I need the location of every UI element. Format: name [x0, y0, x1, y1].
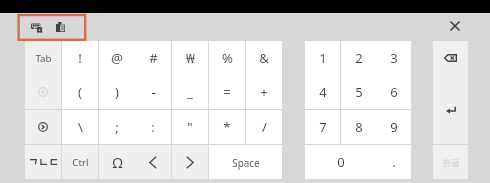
button[interactable]: .: [376, 145, 411, 179]
button[interactable]: =: [209, 75, 245, 109]
button[interactable]: :: [135, 110, 171, 144]
staticText: 5: [355, 83, 363, 101]
button[interactable]: ": [172, 110, 208, 144]
staticText: 1: [319, 49, 327, 67]
staticText: 한글: [442, 157, 460, 168]
staticText: 2: [355, 49, 363, 67]
staticText: Tab: [35, 52, 52, 65]
button[interactable]: 한글: [433, 145, 468, 179]
staticText: +: [260, 83, 268, 101]
button[interactable]: +: [246, 75, 282, 109]
button[interactable]: Ctrl: [62, 145, 98, 179]
button[interactable]: Keyboard settings: [31, 22, 42, 32]
button[interactable]: Backspace: [433, 41, 468, 75]
button[interactable]: 5: [341, 75, 376, 109]
button[interactable]: Space: [209, 145, 282, 179]
button[interactable]: 3: [376, 41, 411, 75]
button[interactable]: (: [62, 75, 98, 109]
staticText: :: [151, 118, 155, 136]
staticText: 3: [390, 49, 398, 67]
staticText: (: [78, 83, 82, 101]
button[interactable]: 9: [376, 110, 411, 144]
staticText: ": [187, 118, 193, 136]
button[interactable]: *: [209, 110, 245, 144]
staticText: 4: [319, 83, 327, 101]
staticText: ₩: [186, 49, 195, 67]
button[interactable]: 4: [305, 75, 340, 109]
button[interactable]: _: [172, 75, 208, 109]
staticText: /: [262, 118, 267, 136]
staticText: ;: [115, 118, 119, 136]
staticText: @: [111, 49, 123, 67]
staticText: 7: [319, 118, 327, 136]
button[interactable]: 1: [305, 41, 340, 75]
button[interactable]: ;: [99, 110, 135, 144]
staticText: Ctrl: [72, 156, 89, 169]
staticText: \: [78, 118, 83, 136]
staticText: &: [259, 49, 269, 67]
staticText: %: [222, 49, 233, 67]
button[interactable]: Korean keyboard: [25, 145, 61, 179]
button[interactable]: #: [135, 41, 171, 75]
staticText: 6: [390, 83, 398, 101]
staticText: 0: [337, 153, 345, 171]
staticText: -: [151, 83, 156, 101]
button[interactable]: Next symbol page: [25, 110, 61, 144]
button[interactable]: Next: [172, 145, 208, 179]
staticText: !: [78, 49, 82, 67]
button[interactable]: 2: [341, 41, 376, 75]
button[interactable]: -: [135, 75, 171, 109]
staticText: #: [149, 49, 158, 67]
button[interactable]: \: [62, 110, 98, 144]
button[interactable]: /: [246, 110, 282, 144]
button[interactable]: ₩: [172, 41, 208, 75]
staticText: _: [187, 83, 193, 101]
button[interactable]: &: [246, 41, 282, 75]
button[interactable]: @: [99, 41, 135, 75]
button[interactable]: Tab: [25, 41, 61, 75]
button[interactable]: 6: [376, 75, 411, 109]
button[interactable]: Ω: [99, 145, 135, 179]
button[interactable]: !: [62, 41, 98, 75]
button[interactable]: 7: [305, 110, 340, 144]
button[interactable]: Previous: [135, 145, 171, 179]
button[interactable]: Clipboard: [56, 22, 65, 32]
staticText: *: [223, 118, 231, 136]
button[interactable]: ): [99, 75, 135, 109]
button[interactable]: Close: [446, 17, 464, 35]
button[interactable]: Previous symbol page: [25, 75, 61, 109]
staticText: .: [392, 153, 396, 171]
staticText: ): [115, 83, 119, 101]
button[interactable]: Enter: [433, 75, 468, 144]
staticText: Ω: [112, 153, 123, 172]
staticText: =: [223, 83, 231, 101]
staticText: Space: [232, 156, 260, 169]
staticText: 8: [355, 118, 363, 136]
staticText: 9: [390, 118, 398, 136]
button[interactable]: %: [209, 41, 245, 75]
button[interactable]: 0: [305, 145, 376, 179]
button[interactable]: 8: [341, 110, 376, 144]
